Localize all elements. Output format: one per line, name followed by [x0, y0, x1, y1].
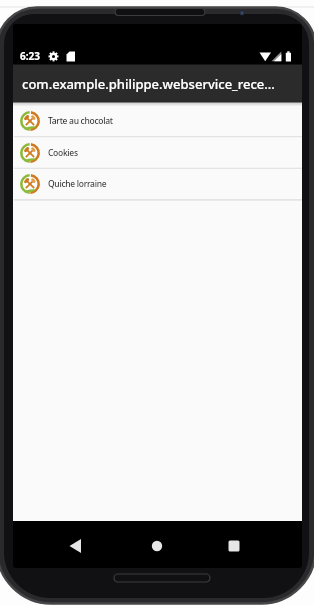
staticText: Quiche lorraine: [48, 178, 107, 190]
staticText: 6:23: [20, 49, 40, 63]
staticText: com.example.philippe.webservice_rece…: [22, 75, 275, 93]
button[interactable]: Cookies: [13, 137, 302, 169]
staticText: Cookies: [48, 147, 78, 159]
button[interactable]: Quiche lorraine: [13, 168, 302, 200]
button[interactable]: [61, 532, 89, 560]
button[interactable]: [220, 532, 248, 560]
button[interactable]: [143, 532, 171, 560]
button[interactable]: Tarte au chocolat: [13, 105, 302, 137]
staticText: Tarte au chocolat: [48, 115, 113, 127]
